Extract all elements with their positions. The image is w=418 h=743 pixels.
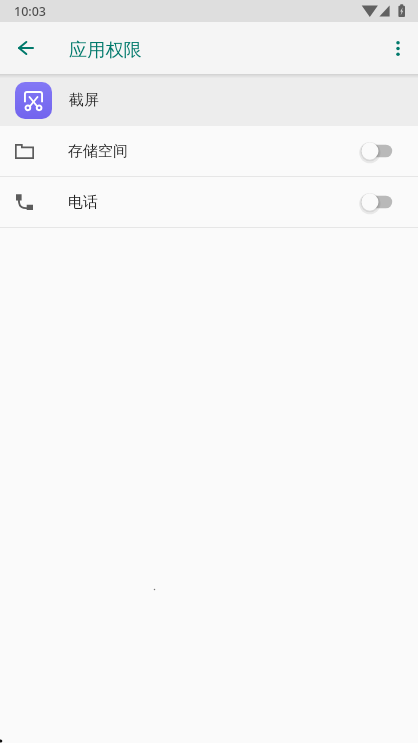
staticText: 应用权限 xyxy=(69,38,142,61)
staticText: 电话 xyxy=(68,193,98,212)
button[interactable]: Back xyxy=(0,22,52,74)
staticText: 10:03 xyxy=(14,3,47,20)
button[interactable]: 存储空间 xyxy=(0,126,418,176)
button[interactable]: 电话 xyxy=(0,177,418,227)
staticText: 截屏 xyxy=(69,91,99,110)
staticText: 存储空间 xyxy=(68,142,128,161)
button[interactable]: More options xyxy=(377,24,418,72)
button[interactable]: 截屏 xyxy=(0,74,418,126)
